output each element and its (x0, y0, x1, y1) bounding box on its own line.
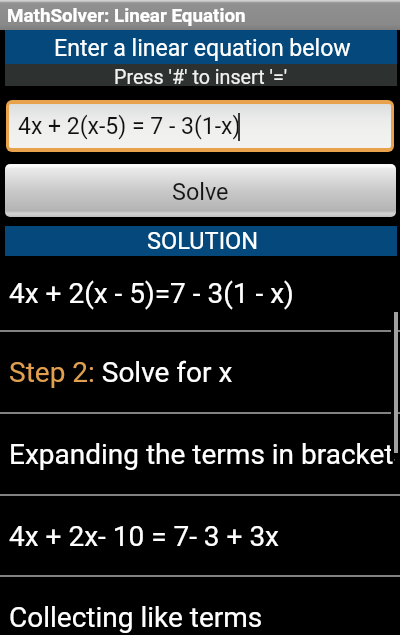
staticText: Press '#' to insert '=' (114, 66, 288, 88)
button[interactable]: 4x + 2(x - 5)=7 - 3(1 - x) (0, 256, 400, 330)
staticText: Step 2: Solve for x (9, 356, 233, 389)
button[interactable]: 4x + 2(x-5) = 7 - 3(1-x) (9, 104, 391, 148)
staticText: 4x + 2(x-5) = 7 - 3(1-x) (18, 113, 241, 140)
button[interactable]: 4x + 2x- 10 = 7- 3 + 3x (0, 496, 400, 576)
button[interactable]: Expanding the terms in brackets (0, 414, 400, 494)
staticText: Collecting like terms (9, 601, 263, 634)
button[interactable]: Solve (5, 164, 396, 217)
button[interactable]: Step 2: Solve for x (0, 332, 400, 412)
button[interactable]: Collecting like terms (0, 577, 400, 635)
staticText: Solve (172, 178, 229, 205)
staticText: Expanding the terms in brackets (9, 438, 395, 471)
staticText: SOLUTION (147, 227, 259, 255)
staticText: 4x + 2(x - 5)=7 - 3(1 - x) (9, 277, 294, 310)
staticText: Enter a linear equation below (54, 35, 351, 62)
staticText: 4x + 2x- 10 = 7- 3 + 3x (9, 520, 280, 553)
staticText: MathSolver: Linear Equation (7, 5, 246, 27)
